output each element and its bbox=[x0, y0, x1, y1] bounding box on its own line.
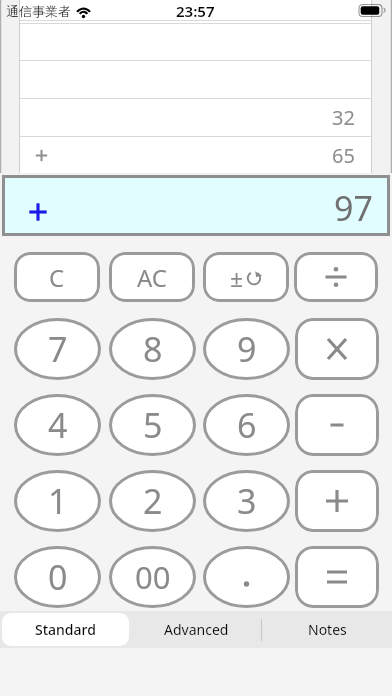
staticText: 通信事業者 bbox=[6, 3, 71, 19]
button[interactable]: 00 bbox=[109, 546, 196, 608]
button[interactable] bbox=[294, 252, 378, 302]
button[interactable]: 5 bbox=[109, 394, 196, 456]
staticText: ± bbox=[230, 262, 244, 293]
button[interactable]: Standard bbox=[2, 613, 129, 646]
staticText: 8 bbox=[143, 326, 163, 372]
staticText: Advanced bbox=[164, 620, 229, 639]
button[interactable]: 6 bbox=[203, 394, 290, 456]
staticText: 4 bbox=[48, 402, 68, 448]
staticText: 7 bbox=[48, 326, 68, 372]
staticText: 3 bbox=[237, 478, 257, 524]
staticText: C bbox=[49, 261, 65, 294]
staticText: 1 bbox=[48, 478, 68, 524]
button[interactable]: 3 bbox=[203, 470, 290, 532]
button[interactable]: 2 bbox=[109, 470, 196, 532]
button[interactable] bbox=[295, 470, 379, 532]
button[interactable]: Advanced bbox=[131, 611, 261, 648]
button[interactable]: 97 bbox=[2, 175, 390, 236]
button[interactable]: 9 bbox=[203, 318, 290, 380]
staticText: 65 bbox=[332, 142, 355, 169]
staticText: 5 bbox=[143, 402, 163, 448]
button[interactable]: AC bbox=[109, 252, 195, 302]
button[interactable]: C bbox=[14, 252, 100, 302]
staticText: 2 bbox=[143, 478, 163, 524]
button[interactable]: Notes bbox=[262, 611, 392, 648]
button[interactable] bbox=[203, 546, 290, 608]
staticText: 32 bbox=[332, 104, 355, 131]
staticText: 00 bbox=[135, 556, 171, 598]
button[interactable]: 8 bbox=[109, 318, 196, 380]
staticText: 6 bbox=[237, 402, 257, 448]
staticText: AC bbox=[137, 261, 168, 294]
button[interactable] bbox=[295, 394, 379, 456]
button[interactable] bbox=[295, 546, 379, 608]
button[interactable]: 0 bbox=[14, 546, 101, 608]
staticText: 97 bbox=[334, 185, 373, 231]
button[interactable]: 4 bbox=[14, 394, 101, 456]
staticText: 23:57 bbox=[176, 1, 215, 21]
button[interactable]: 7 bbox=[14, 318, 101, 380]
staticText: 0 bbox=[48, 554, 68, 600]
staticText: 9 bbox=[237, 326, 257, 372]
staticText: Standard bbox=[35, 620, 96, 639]
button[interactable] bbox=[295, 318, 379, 380]
button[interactable]: ± bbox=[203, 252, 289, 302]
staticText: Notes bbox=[308, 620, 347, 639]
button[interactable]: 1 bbox=[14, 470, 101, 532]
